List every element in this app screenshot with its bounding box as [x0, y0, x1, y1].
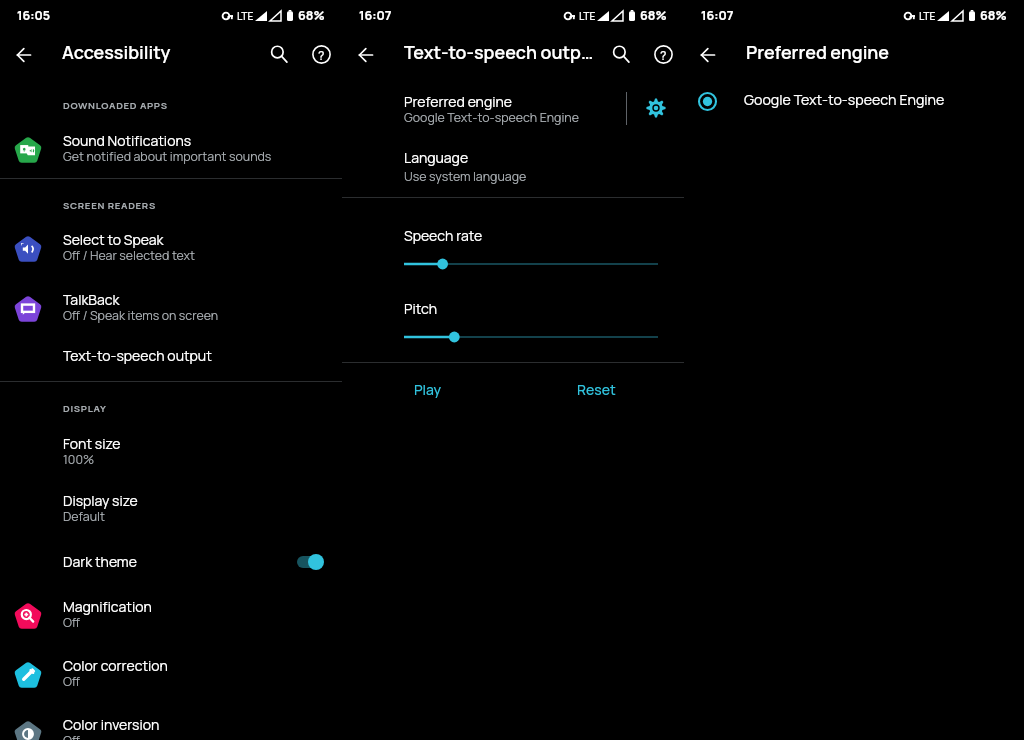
button[interactable]: Navigate up — [349, 38, 382, 71]
staticText: 68% — [298, 7, 325, 24]
button[interactable]: Sound Notifications — [0, 123, 342, 172]
button[interactable]: Help — [304, 37, 338, 71]
staticText: 16:05 — [17, 7, 51, 24]
button[interactable]: Select to Speak — [0, 222, 342, 271]
button[interactable]: Color inversion — [0, 707, 342, 740]
button[interactable]: Engine settings — [633, 84, 679, 132]
button[interactable]: Navigate up — [7, 38, 40, 71]
staticText: DISPLAY — [63, 402, 107, 415]
staticText: 100% — [63, 451, 95, 468]
staticText: Text-to-speech output — [63, 346, 212, 365]
staticText: Color correction — [63, 656, 168, 675]
button[interactable]: Search — [604, 37, 638, 71]
button[interactable]: Navigate up — [691, 38, 724, 71]
button[interactable]: TalkBack — [0, 282, 342, 331]
staticText: Dark theme — [63, 552, 137, 571]
staticText: Play — [414, 380, 442, 399]
staticText: LTE — [919, 9, 936, 23]
button[interactable]: Play — [368, 362, 488, 416]
staticText: ? — [660, 47, 667, 63]
button[interactable]: Help — [646, 37, 680, 71]
staticText: Language — [404, 148, 469, 167]
button[interactable]: Dark theme toggle — [293, 549, 331, 575]
staticText: Preferred engine — [404, 92, 512, 111]
staticText: Off — [63, 614, 81, 631]
staticText: 16:07 — [359, 7, 392, 24]
button[interactable]: Preferred engine — [342, 86, 684, 134]
staticText: 68% — [980, 7, 1007, 24]
button[interactable]: Display size — [0, 483, 342, 532]
staticText: Color inversion — [63, 715, 160, 734]
staticText: Speech rate — [404, 226, 483, 245]
button[interactable]: Font size — [0, 426, 342, 475]
staticText: ? — [318, 47, 325, 63]
staticText: Reset — [577, 380, 616, 399]
staticText: SCREEN READERS — [63, 199, 156, 212]
staticText: Off — [63, 673, 81, 690]
staticText: Sound Notifications — [63, 131, 192, 150]
button[interactable]: Dark theme — [0, 544, 342, 578]
button[interactable]: Reset — [536, 362, 656, 416]
staticText: Default — [63, 508, 105, 525]
staticText: LTE — [579, 9, 596, 23]
button[interactable] — [404, 253, 658, 275]
staticText: 16:07 — [701, 7, 734, 24]
staticText: Off / Speak items on screen — [63, 307, 219, 324]
staticText: Text-to-speech outp… — [404, 40, 594, 64]
staticText: LTE — [237, 9, 254, 23]
button[interactable]: Text-to-speech output — [0, 338, 342, 372]
staticText: 68% — [640, 7, 667, 24]
staticText: Off — [63, 732, 81, 740]
staticText: Accessibility — [62, 40, 171, 64]
staticText: DOWNLOADED APPS — [63, 99, 168, 112]
staticText: Off / Hear selected text — [63, 247, 196, 264]
staticText: Get notified about important sounds — [63, 148, 272, 165]
button[interactable]: Language — [342, 142, 684, 186]
staticText: Preferred engine — [746, 40, 889, 64]
staticText: Google Text-to-speech Engine — [404, 109, 579, 126]
staticText: Use system language — [404, 168, 527, 185]
staticText: Pitch — [404, 299, 438, 318]
staticText: Select to Speak — [63, 230, 164, 249]
button[interactable]: Search — [262, 37, 296, 71]
staticText: Magnification — [63, 597, 152, 616]
staticText: Font size — [63, 434, 121, 453]
button[interactable] — [404, 326, 658, 348]
button[interactable]: Color correction — [0, 648, 342, 697]
staticText: Display size — [63, 491, 138, 510]
staticText: TalkBack — [63, 290, 120, 309]
button[interactable]: Google Text-to-speech Engine — [684, 82, 1024, 122]
staticText: Google Text-to-speech Engine — [744, 90, 945, 109]
button[interactable]: Magnification — [0, 589, 342, 638]
